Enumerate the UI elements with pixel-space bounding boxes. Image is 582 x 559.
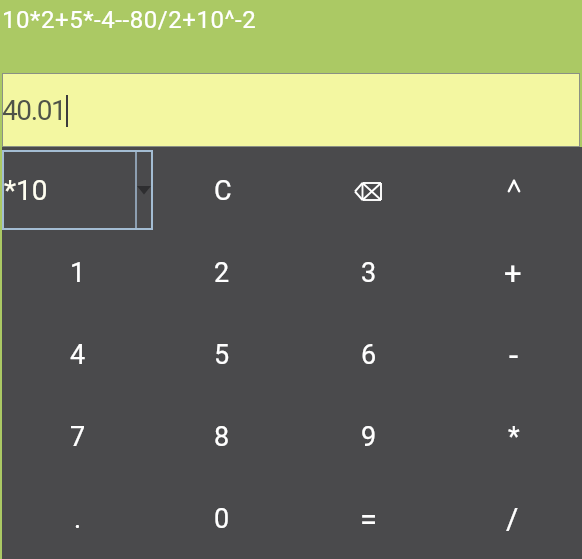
staticText: . [74, 503, 82, 535]
button[interactable]: 4 [6, 314, 150, 396]
button[interactable]: 40.01 [2, 73, 580, 147]
button[interactable]: 8 [150, 396, 294, 478]
staticText: = [360, 501, 378, 537]
button[interactable]: / [438, 478, 582, 559]
staticText: - [509, 336, 519, 375]
staticText: 6 [361, 339, 377, 371]
staticText: 3 [361, 257, 377, 289]
staticText: 4 [70, 339, 86, 371]
button[interactable]: 0 [150, 478, 294, 559]
button[interactable] [296, 150, 439, 232]
staticText: 10*2+5*-4--80/2+10^-2 [2, 6, 257, 34]
button[interactable]: + [438, 232, 582, 314]
button[interactable]: 9 [294, 396, 438, 478]
staticText: 9 [361, 421, 377, 453]
staticText: * [508, 421, 520, 453]
staticText: C [214, 175, 232, 207]
staticText: 40.01 [2, 94, 66, 127]
button[interactable]: 5 [150, 314, 294, 396]
staticText: *10 [4, 174, 48, 207]
staticText: 7 [70, 421, 86, 453]
staticText: 8 [214, 421, 230, 453]
button[interactable]: = [294, 478, 438, 559]
button[interactable]: 6 [294, 314, 438, 396]
button[interactable]: - [438, 314, 582, 396]
staticText: 5 [214, 339, 230, 371]
button[interactable]: 1 [6, 232, 150, 314]
staticText: 1 [70, 257, 86, 289]
button[interactable] [439, 150, 582, 232]
staticText: 2 [214, 257, 230, 289]
button[interactable]: 2 [150, 232, 294, 314]
button[interactable]: *10 [2, 150, 153, 230]
button[interactable]: 3 [294, 232, 438, 314]
staticText: 0 [214, 503, 230, 535]
button[interactable]: * [438, 396, 582, 478]
button[interactable]: . [6, 478, 150, 559]
button[interactable]: 7 [6, 396, 150, 478]
button[interactable]: C [153, 150, 296, 232]
staticText: + [504, 255, 522, 291]
staticText: / [506, 501, 519, 536]
